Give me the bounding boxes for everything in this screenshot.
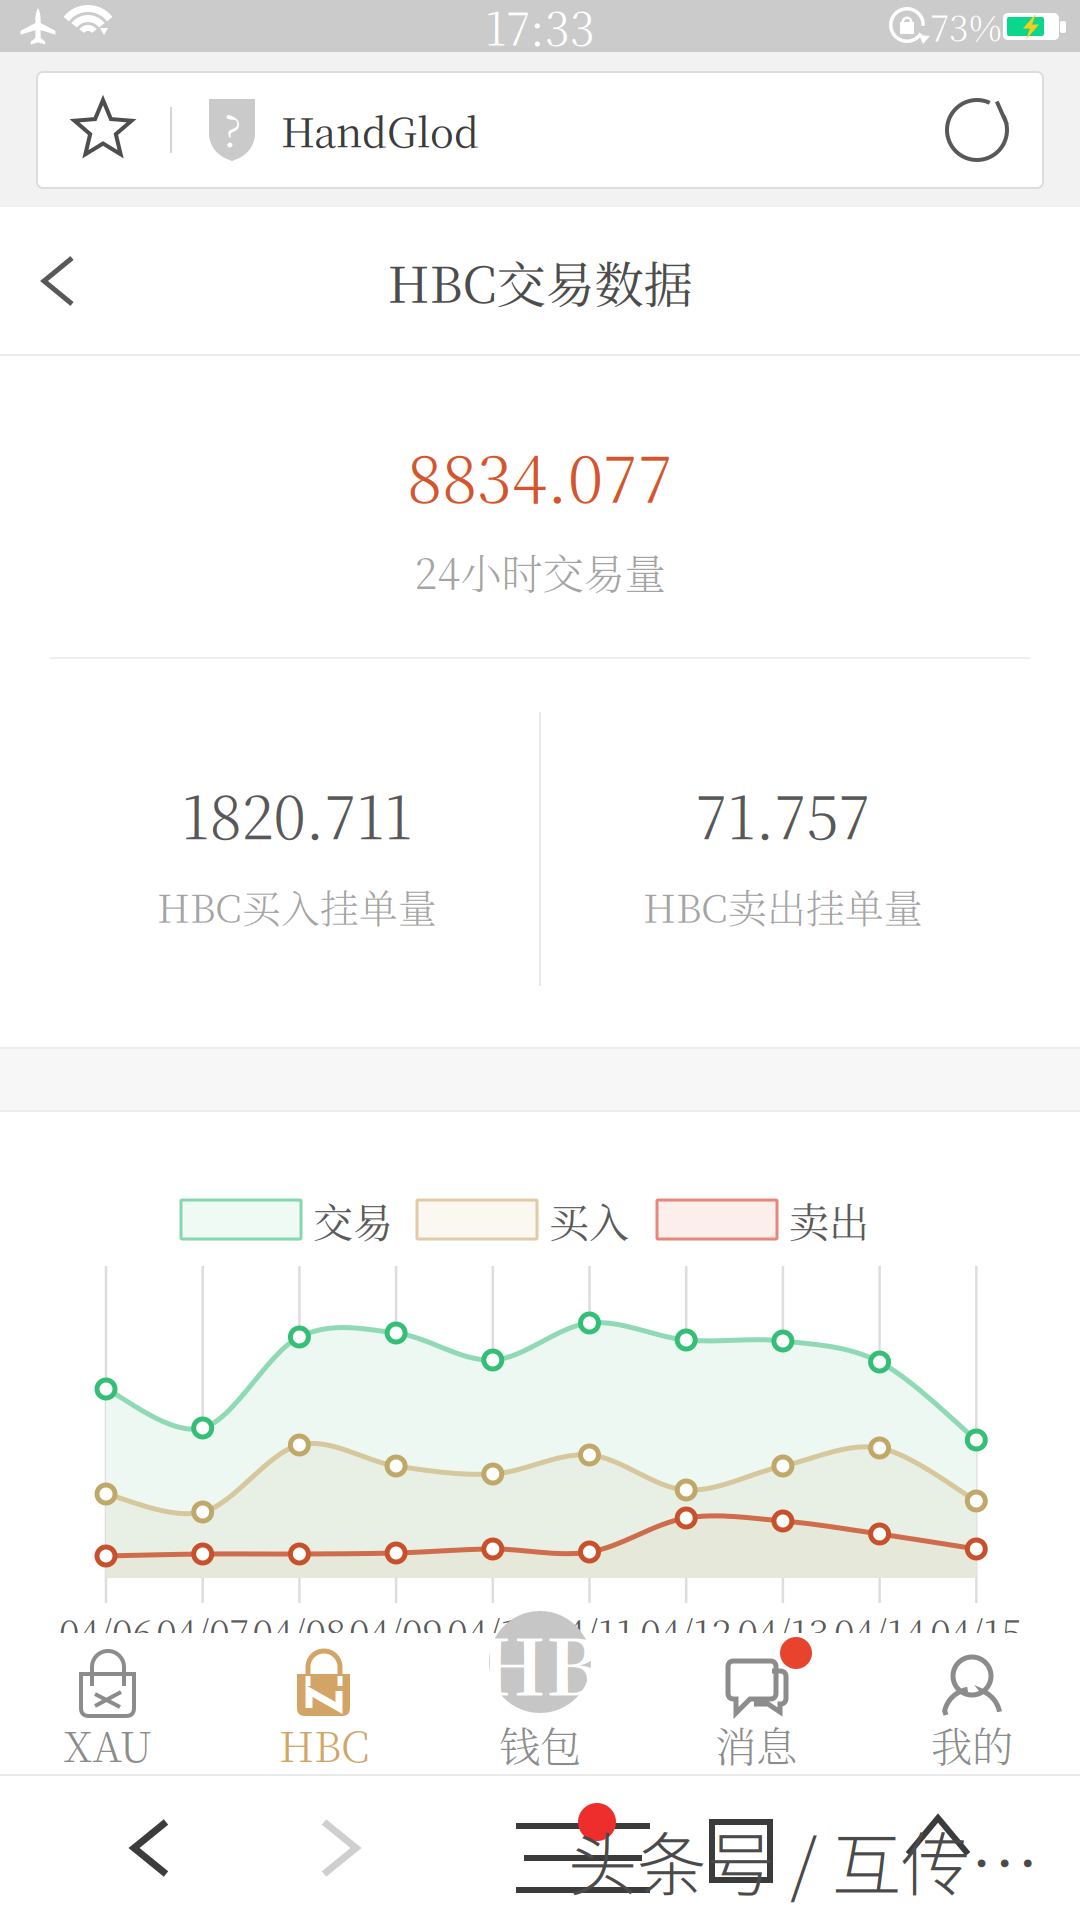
staticText: 头条号 / 互传分享 bbox=[568, 1810, 1080, 1910]
button[interactable]: HBC bbox=[216, 1633, 432, 1776]
staticText: HB bbox=[479, 1606, 601, 1717]
staticText: HBC bbox=[279, 1714, 369, 1774]
staticText: 71.757 bbox=[695, 772, 870, 856]
staticText: 我的 bbox=[931, 1714, 1013, 1774]
staticText: XAU bbox=[63, 1714, 152, 1774]
button[interactable]: 消息 bbox=[648, 1633, 864, 1776]
staticText: HBC卖出挂单量 bbox=[643, 878, 923, 934]
staticText: 04/14 bbox=[834, 1604, 925, 1658]
button[interactable]: Back bbox=[75, 1776, 225, 1920]
button[interactable]: ? bbox=[37, 72, 1043, 188]
staticText: HBC交易数据 bbox=[387, 246, 692, 317]
staticText: 04/13 bbox=[737, 1604, 828, 1658]
staticText: 04/11 bbox=[545, 1604, 634, 1658]
staticText: 卖出 bbox=[789, 1191, 869, 1249]
staticText: 04/10 bbox=[447, 1604, 538, 1658]
staticText: 交易 bbox=[313, 1191, 393, 1249]
button[interactable]: 我的 bbox=[864, 1633, 1080, 1776]
button[interactable]: HB bbox=[432, 1633, 648, 1776]
staticText: 04/08 bbox=[252, 1604, 346, 1658]
staticText: 买入 bbox=[549, 1191, 629, 1249]
staticText: 04/06 bbox=[59, 1604, 153, 1658]
staticText: 1820.711 bbox=[181, 772, 412, 856]
staticText: 8834.077 bbox=[407, 429, 673, 521]
staticText: HandGlod bbox=[281, 101, 479, 159]
staticText: ? bbox=[223, 97, 241, 159]
staticText: 04/09 bbox=[349, 1604, 443, 1658]
staticText: 钱包 bbox=[499, 1714, 581, 1774]
staticText: 24小时交易量 bbox=[414, 541, 665, 601]
staticText: 04/12 bbox=[640, 1604, 732, 1658]
staticText: 04/07 bbox=[156, 1604, 249, 1658]
staticText: HBC买入挂单量 bbox=[157, 878, 437, 934]
staticText: 消息 bbox=[715, 1714, 797, 1774]
button[interactable]: XAU bbox=[0, 1633, 216, 1776]
staticText: 73% bbox=[930, 0, 1002, 52]
button[interactable]: Back bbox=[0, 207, 130, 356]
staticText: 04/15 bbox=[930, 1604, 1022, 1658]
staticText: 17:33 bbox=[485, 0, 595, 58]
button[interactable]: Forward bbox=[265, 1776, 415, 1920]
